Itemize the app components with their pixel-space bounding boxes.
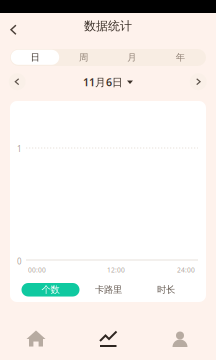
- staticText: 年: [176, 52, 185, 63]
- staticText: 周: [79, 52, 88, 63]
- staticText: 个数: [41, 284, 59, 295]
- button[interactable]: 个数: [21, 283, 79, 296]
- staticText: 0: [17, 256, 22, 267]
- staticText: 时长: [157, 284, 175, 295]
- button[interactable]: 卡路里: [80, 283, 138, 296]
- staticText: 11月6日: [83, 75, 123, 89]
- staticText: 月: [127, 52, 136, 63]
- staticText: 数据统计: [84, 19, 132, 33]
- button[interactable]: Previous day: [9, 73, 26, 90]
- staticText: 卡路里: [95, 284, 122, 295]
- staticText: 00:00: [28, 266, 46, 274]
- button[interactable]: Next day: [190, 73, 207, 90]
- staticText: 1: [17, 144, 22, 154]
- button[interactable]: 年: [156, 50, 204, 65]
- button[interactable]: Back: [6, 14, 30, 38]
- button[interactable]: Statistics: [72, 316, 144, 360]
- staticText: 24:00: [177, 266, 195, 274]
- staticText: 12:00: [107, 266, 125, 274]
- button[interactable]: 日: [11, 50, 59, 65]
- button[interactable]: 周: [59, 50, 108, 65]
- button[interactable]: 11月6日: [73, 73, 143, 91]
- button[interactable]: Home: [0, 316, 72, 360]
- staticText: 日: [30, 52, 39, 63]
- button[interactable]: Profile: [144, 316, 216, 360]
- button[interactable]: 时长: [137, 283, 195, 296]
- button[interactable]: 月: [108, 50, 156, 65]
